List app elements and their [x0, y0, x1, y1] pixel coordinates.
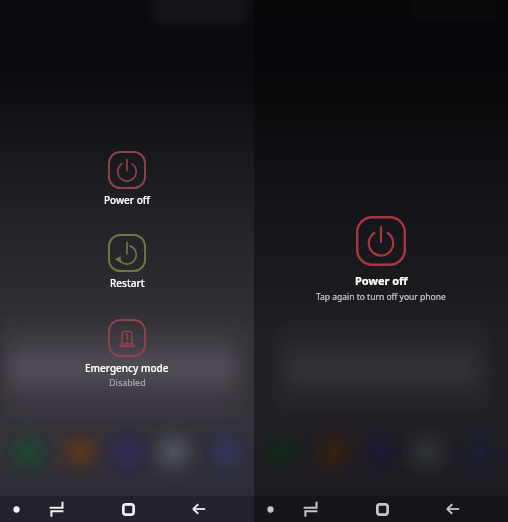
button[interactable]: Recent apps — [360, 496, 404, 522]
button[interactable]: Power off — [94, 151, 160, 207]
staticText: Restart — [110, 276, 145, 290]
staticText: Emergency mode — [85, 361, 169, 375]
button[interactable]: Restart — [98, 234, 156, 290]
staticText: Disabled — [109, 376, 146, 388]
button[interactable]: Recent apps — [106, 496, 150, 522]
staticText: Tap again to turn off your phone — [316, 291, 446, 303]
staticText: Power off — [104, 193, 150, 207]
button[interactable]: Assistant — [248, 496, 292, 522]
button[interactable]: Switch apps — [34, 496, 78, 522]
button[interactable]: Power off — [356, 216, 406, 266]
button[interactable]: Emergency mode — [75, 319, 179, 388]
button[interactable]: Switch apps — [288, 496, 332, 522]
button[interactable]: Back — [431, 496, 475, 522]
button[interactable]: Back — [177, 496, 221, 522]
staticText: Power off — [355, 273, 408, 288]
button[interactable]: Assistant — [0, 496, 38, 522]
